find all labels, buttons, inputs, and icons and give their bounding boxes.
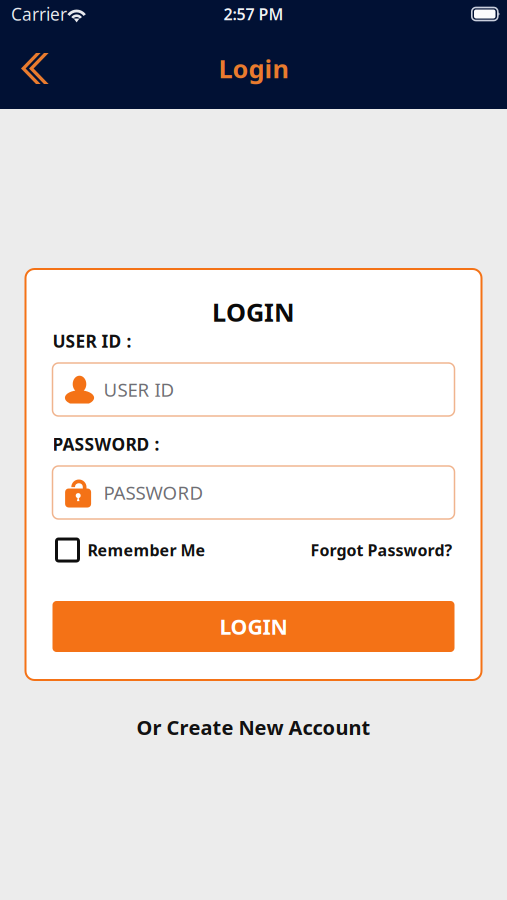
button[interactable]: Forgot Password? [310, 539, 452, 561]
button[interactable]: LOGIN [52, 601, 454, 652]
staticText: USER ID [103, 377, 174, 402]
staticText: Carrier [11, 2, 67, 25]
staticText: 2:57 PM [223, 3, 283, 25]
button[interactable]: Remember Me [56, 539, 205, 561]
staticText: Forgot Password? [310, 539, 452, 561]
staticText: LOGIN [219, 612, 287, 641]
staticText: LOGIN [212, 295, 295, 329]
staticText: PASSWORD : [52, 432, 159, 455]
staticText: Remember Me [87, 539, 205, 561]
button[interactable]: Back [0, 42, 65, 95]
staticText: PASSWORD [103, 480, 203, 505]
staticText: USER ID : [52, 329, 131, 352]
button[interactable]: Or Create New Account [122, 704, 384, 751]
staticText: Or Create New Account [136, 714, 370, 741]
staticText: Login [218, 52, 288, 85]
